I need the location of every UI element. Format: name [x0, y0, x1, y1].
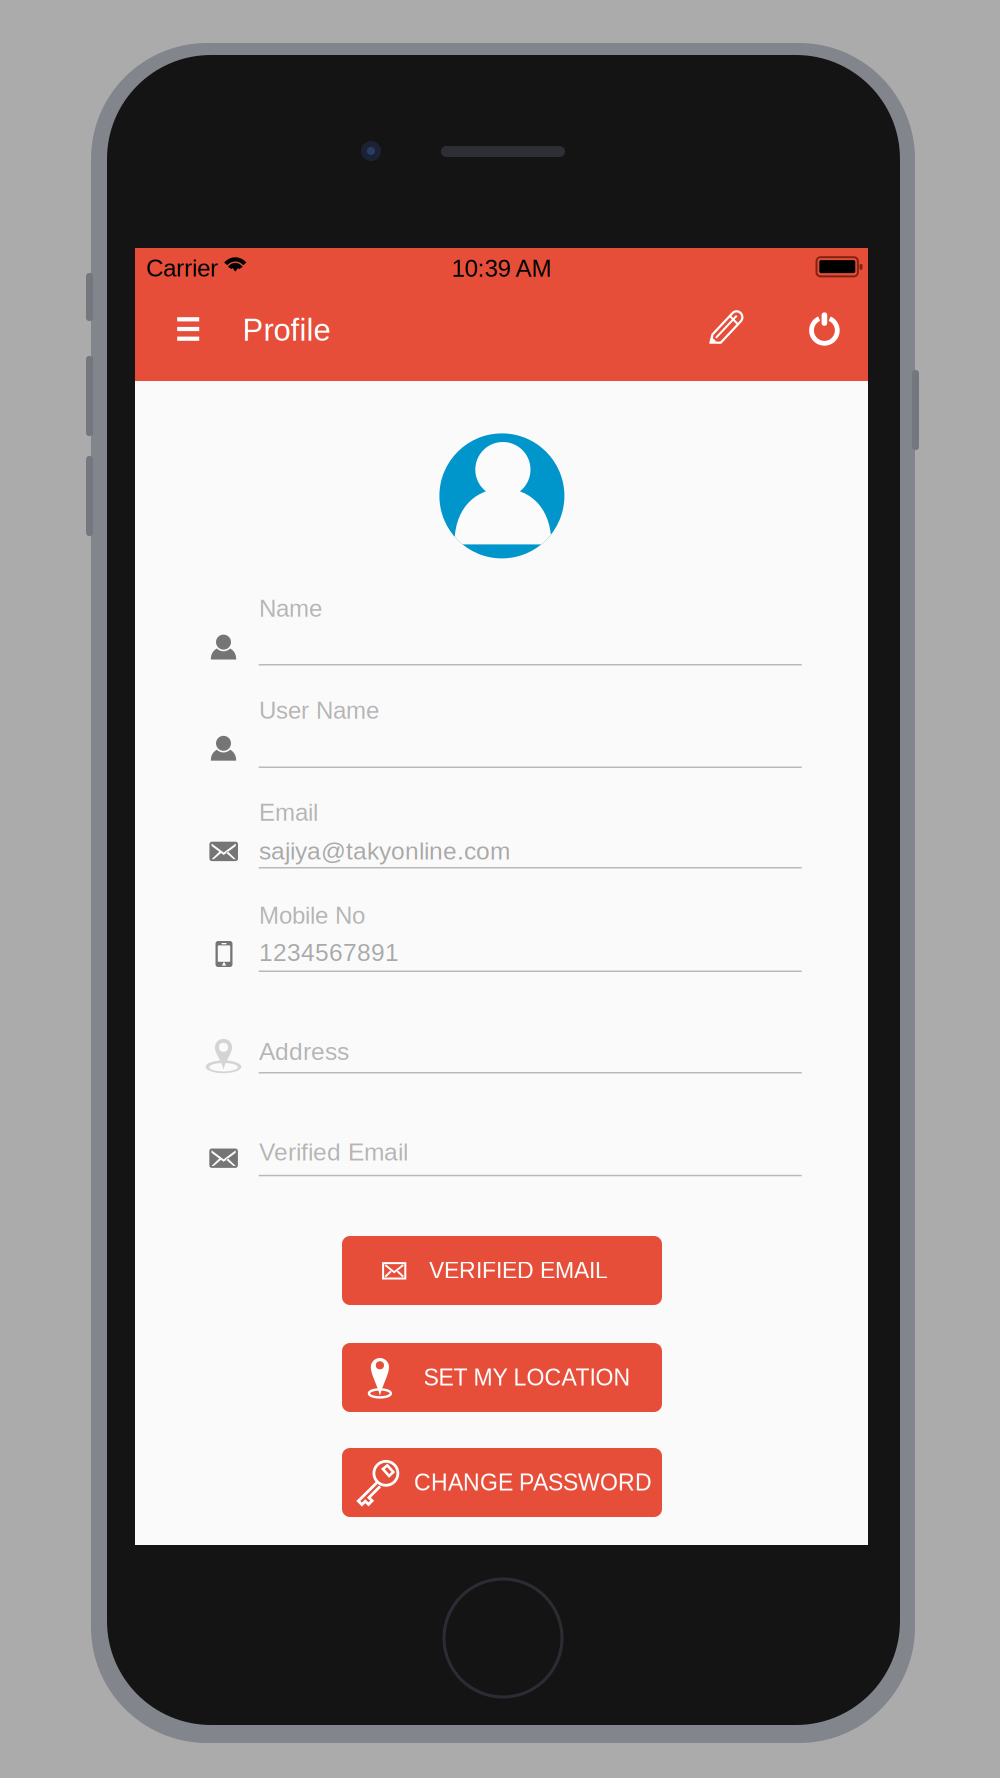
button[interactable]: Profile — [242, 284, 392, 375]
staticText: Address — [259, 1038, 349, 1065]
button[interactable]: Menu — [146, 283, 230, 374]
staticText: Mobile No — [259, 902, 365, 929]
button[interactable]: VERIFIED EMAIL — [342, 1236, 662, 1305]
button[interactable]: Edit profile — [681, 280, 773, 371]
staticText: CHANGE PASSWORD — [414, 1470, 652, 1495]
staticText: Name — [259, 595, 322, 622]
staticText: sajiya@takyonline.com — [259, 837, 510, 865]
staticText: Email — [259, 799, 318, 826]
staticText: 1234567891 — [259, 939, 399, 966]
staticText: SET MY LOCATION — [424, 1365, 631, 1390]
button[interactable]: CHANGE PASSWORD — [342, 1448, 662, 1517]
staticText: Profile — [242, 313, 330, 347]
button[interactable]: Log out — [778, 282, 870, 373]
button[interactable]: SET MY LOCATION — [342, 1343, 662, 1412]
staticText: VERIFIED EMAIL — [429, 1258, 608, 1283]
staticText: 10:39 AM — [451, 255, 551, 282]
staticText: Carrier — [146, 255, 218, 281]
staticText: Verified Email — [259, 1138, 408, 1166]
staticText: User Name — [259, 697, 379, 724]
